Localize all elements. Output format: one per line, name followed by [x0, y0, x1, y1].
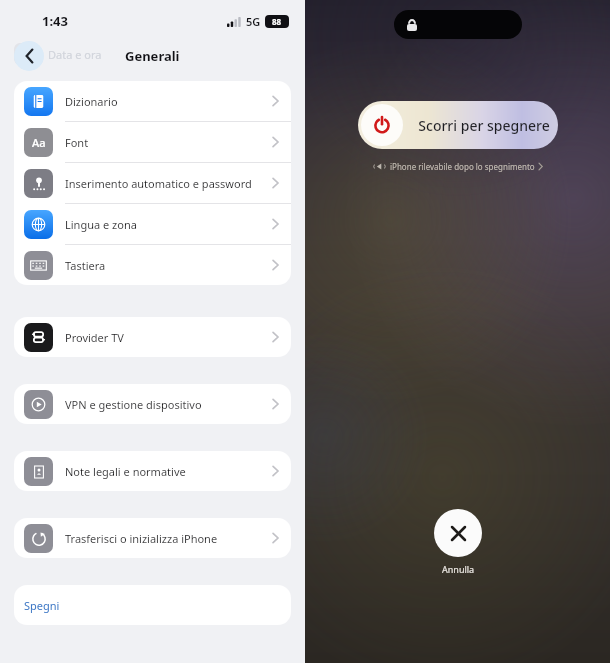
staticText: Tastiera [65, 258, 272, 273]
button[interactable]: Aa [14, 122, 291, 163]
staticText: Scorri per spegnere [410, 116, 558, 135]
staticText: Font [65, 135, 272, 150]
button[interactable]: Provider TV [14, 317, 291, 357]
staticText: 88 [272, 16, 282, 27]
staticText: Trasferisci o inizializza iPhone [65, 531, 272, 546]
staticText: VPN e gestione dispositivo [65, 397, 272, 412]
staticText: Dizionario [65, 94, 272, 109]
staticText: Lingua e zona [65, 217, 272, 232]
button[interactable]: Scorri per spegnere [358, 101, 558, 149]
button[interactable]: Lingua e zona [14, 204, 291, 245]
staticText: Inserimento automatico e password [65, 176, 272, 191]
staticText: Note legali e normative [65, 464, 272, 479]
staticText: Aa [32, 135, 46, 150]
staticText: 1:43 [42, 12, 68, 30]
button[interactable]: Indietro [14, 41, 44, 71]
button[interactable]: Dizionario [14, 81, 291, 122]
button[interactable]: Spegni [14, 585, 291, 625]
staticText: iPhone rilevabile dopo lo spegnimento [390, 161, 535, 172]
staticText: Spegni [24, 598, 60, 613]
staticText: Generali [125, 47, 180, 65]
staticText: Annulla [442, 563, 475, 575]
staticText: Provider TV [65, 330, 272, 345]
button[interactable]: Inserimento automatico e password [14, 163, 291, 204]
button[interactable]: Tastiera [14, 245, 291, 285]
button[interactable]: Annulla [434, 509, 482, 575]
staticText: Data e ora [48, 47, 102, 62]
button[interactable]: VPN e gestione dispositivo [14, 384, 291, 424]
button[interactable]: Note legali e normative [14, 451, 291, 491]
staticText: 5G [246, 14, 261, 29]
button[interactable]: Trasferisci o inizializza iPhone [14, 518, 291, 558]
